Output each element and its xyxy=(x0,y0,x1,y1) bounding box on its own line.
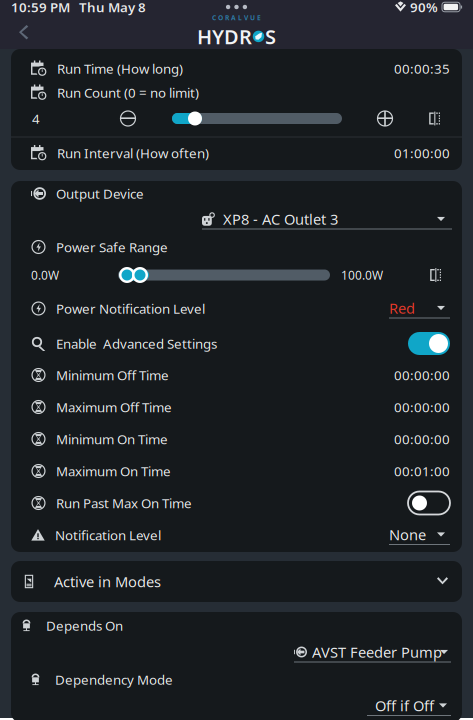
staticText: 00:00:00 xyxy=(394,366,450,384)
button[interactable]: Enable Advanced Settings xyxy=(408,332,450,355)
staticText: 00:00:35 xyxy=(394,60,450,77)
staticText: Power Notification Level xyxy=(56,300,205,317)
staticText: C O R A L V U E xyxy=(212,13,261,22)
staticText: Active in Modes xyxy=(54,572,161,591)
button[interactable]: Maximum On Time xyxy=(11,455,462,487)
staticText: 90% xyxy=(410,0,438,16)
staticText: Maximum Off Time xyxy=(56,398,172,416)
staticText: AVST Feeder Pump xyxy=(312,642,442,662)
staticText: 0.0W xyxy=(31,267,59,283)
button[interactable]: Depends on: AVST Feeder Pump xyxy=(294,642,451,662)
staticText: S xyxy=(265,23,276,50)
staticText: 00:00:00 xyxy=(394,430,450,448)
staticText: 00:01:00 xyxy=(394,462,450,480)
staticText: Minimum Off Time xyxy=(56,366,169,384)
staticText: Power Safe Range xyxy=(56,238,168,256)
staticText: 01:00:00 xyxy=(394,144,450,162)
button[interactable]: Minimum Off Time xyxy=(11,359,462,391)
staticText: Maximum On Time xyxy=(56,462,171,480)
staticText: XP8 - AC Outlet 3 xyxy=(223,209,338,229)
button[interactable]: Notification level: None xyxy=(389,525,450,545)
button[interactable]: Run count options xyxy=(423,108,445,128)
staticText: Minimum On Time xyxy=(56,430,168,448)
staticText: Enable Advanced Settings xyxy=(56,335,217,352)
staticText: Depends On xyxy=(46,617,123,634)
button[interactable]: Run Interval (How often) xyxy=(11,137,462,168)
staticText: Output Device xyxy=(56,185,144,202)
staticText: 100.0W xyxy=(341,267,383,283)
staticText: None xyxy=(389,525,426,544)
staticText: Run Interval (How often) xyxy=(57,144,209,162)
staticText: Run Count (0 = no limit) xyxy=(57,84,199,101)
staticText: 10:59 PM xyxy=(11,0,70,16)
staticText: Red xyxy=(389,298,415,318)
button[interactable]: Dependency mode: Off if Off xyxy=(367,696,451,716)
button[interactable]: Decrease run count xyxy=(118,108,138,128)
button[interactable]: Power notification level: Red xyxy=(389,298,450,318)
staticText: 00:00:00 xyxy=(394,398,450,416)
staticText: HYDR xyxy=(197,23,252,50)
staticText: Notification Level xyxy=(55,526,161,544)
staticText: Thu May 8 xyxy=(79,0,146,16)
button[interactable]: Back xyxy=(6,17,42,47)
button[interactable]: Run Past Max On Time xyxy=(408,491,450,514)
button[interactable]: Minimum On Time xyxy=(11,423,462,455)
staticText: Run Past Max On Time xyxy=(56,494,192,512)
button[interactable]: Active in Modes xyxy=(11,561,462,602)
button[interactable]: Output device: XP8 - AC Outlet 3 xyxy=(202,209,452,229)
staticText: Dependency Mode xyxy=(55,671,173,688)
button[interactable]: Maximum Off Time xyxy=(11,391,462,423)
button[interactable]: Run Count (0 = no limit) xyxy=(11,80,462,104)
staticText: Off if Off xyxy=(375,696,434,715)
button[interactable]: Power range options xyxy=(424,265,446,285)
button[interactable]: Increase run count xyxy=(375,108,395,128)
staticText: Run Time (How long) xyxy=(57,60,183,77)
staticText: 4 xyxy=(32,110,40,127)
button[interactable]: Run Time (How long) xyxy=(11,56,462,80)
